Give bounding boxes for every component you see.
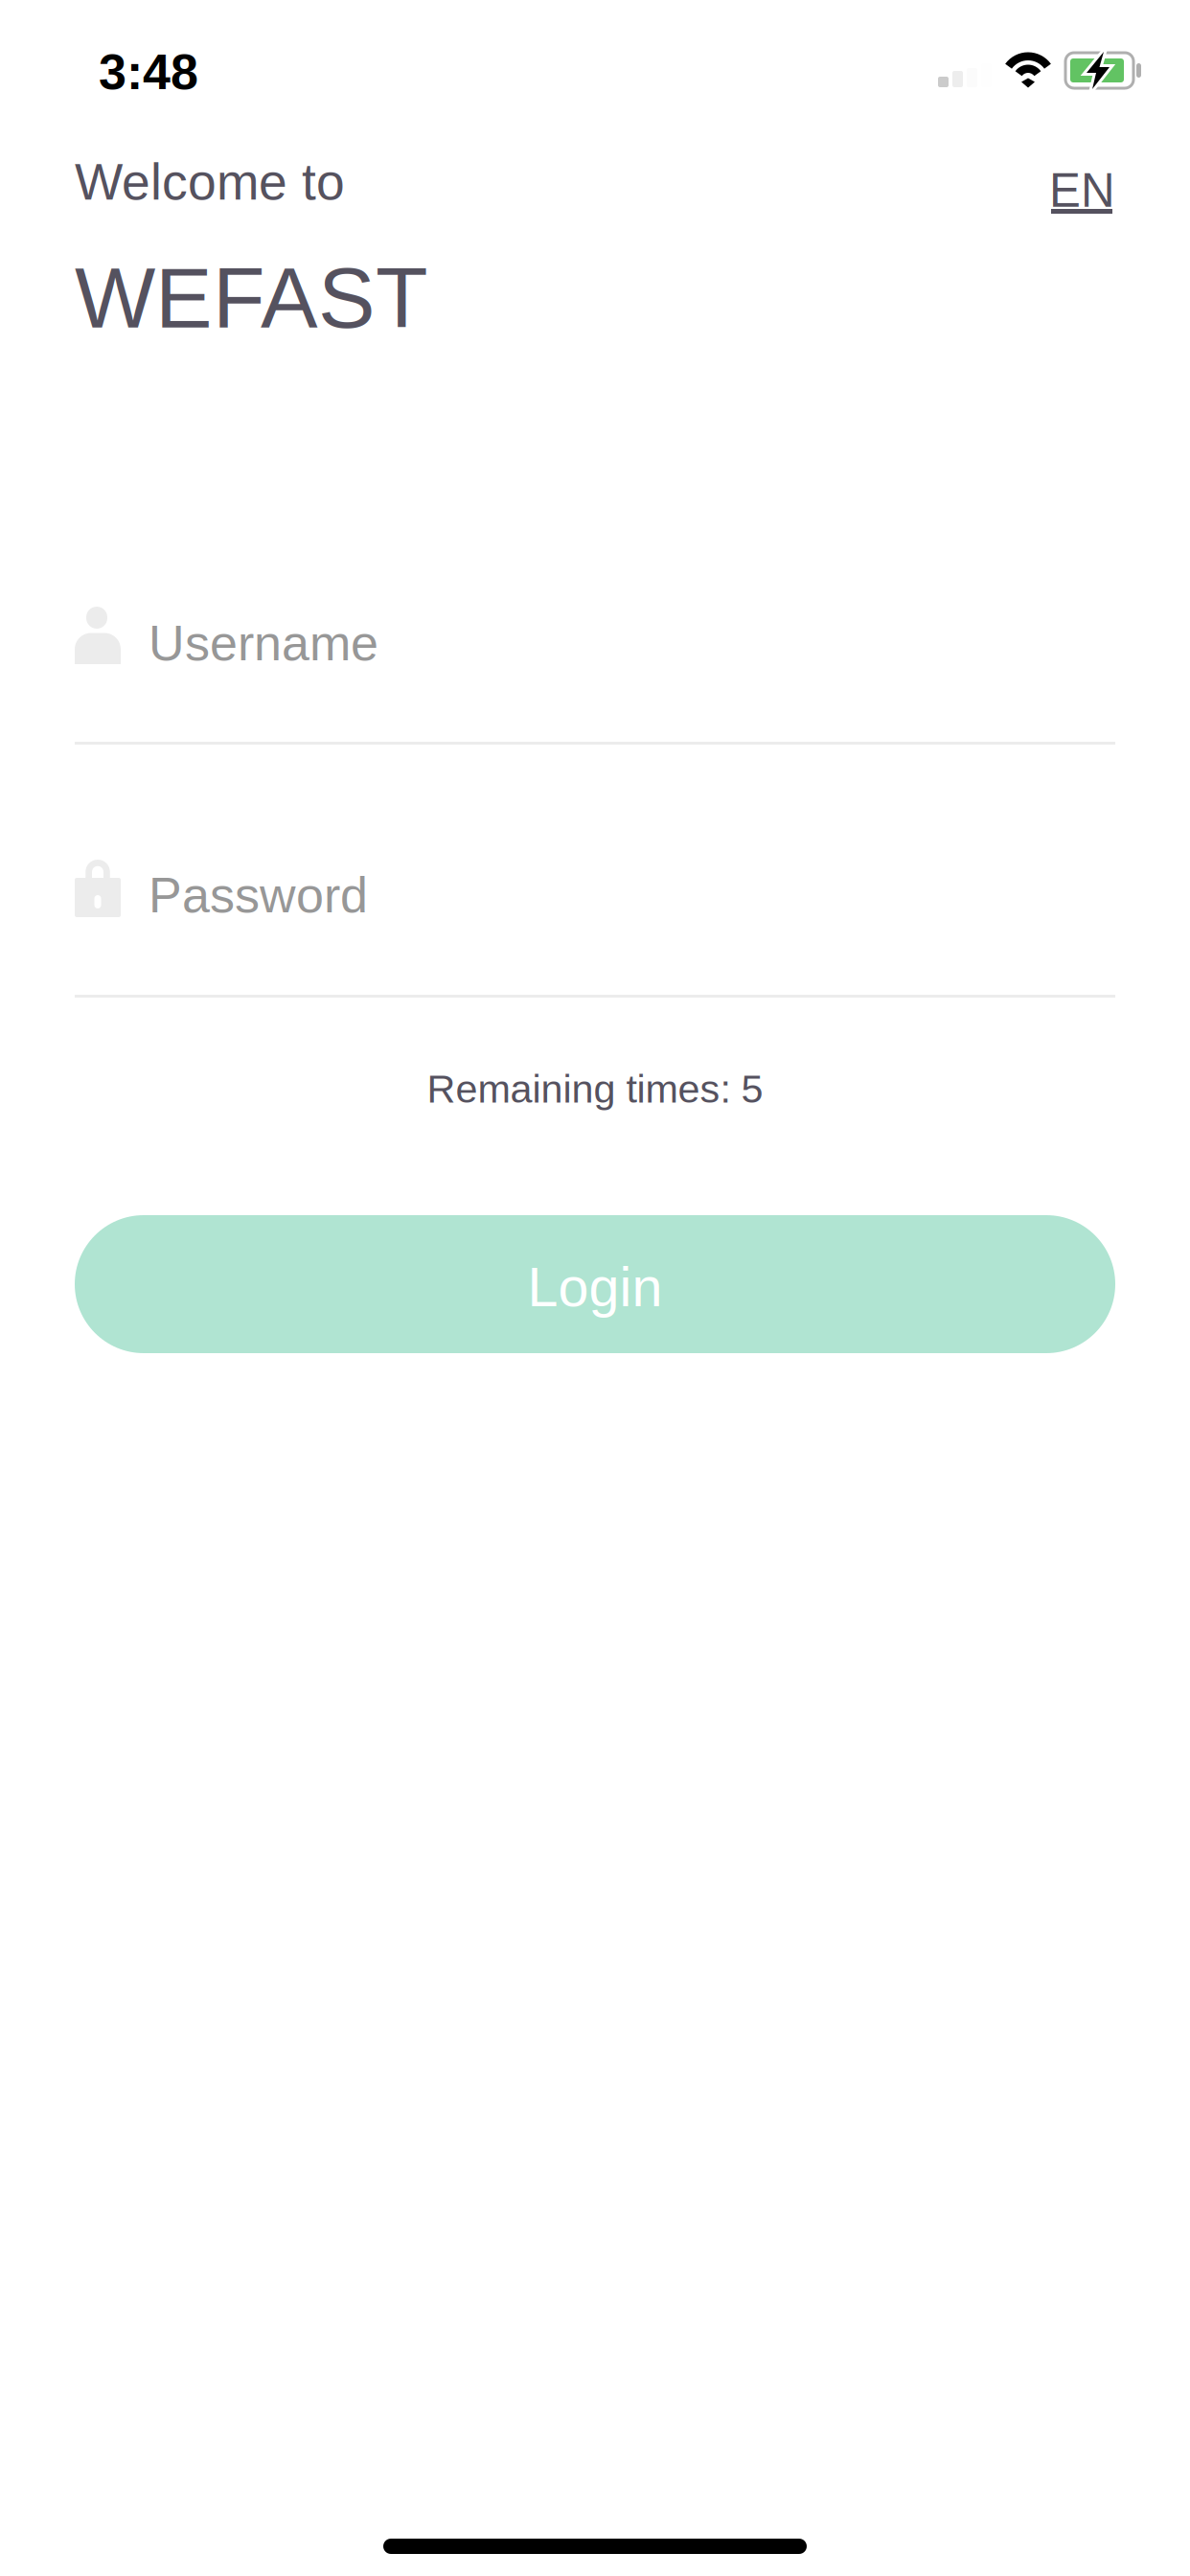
staticText: Login — [527, 1256, 663, 1318]
staticText: Remaining times: 5 — [427, 1067, 763, 1111]
staticText: Welcome to — [75, 153, 345, 210]
staticText: WEFAST — [75, 250, 428, 346]
button[interactable]: Username — [75, 587, 1115, 745]
button[interactable]: Login — [75, 1215, 1115, 1353]
button[interactable]: Password — [75, 840, 1115, 998]
staticText: Username — [149, 615, 378, 671]
staticText: 3:48 — [99, 44, 198, 100]
staticText: Password — [149, 867, 368, 923]
staticText: EN — [1049, 164, 1115, 217]
button[interactable]: Language: EN — [1051, 164, 1118, 214]
